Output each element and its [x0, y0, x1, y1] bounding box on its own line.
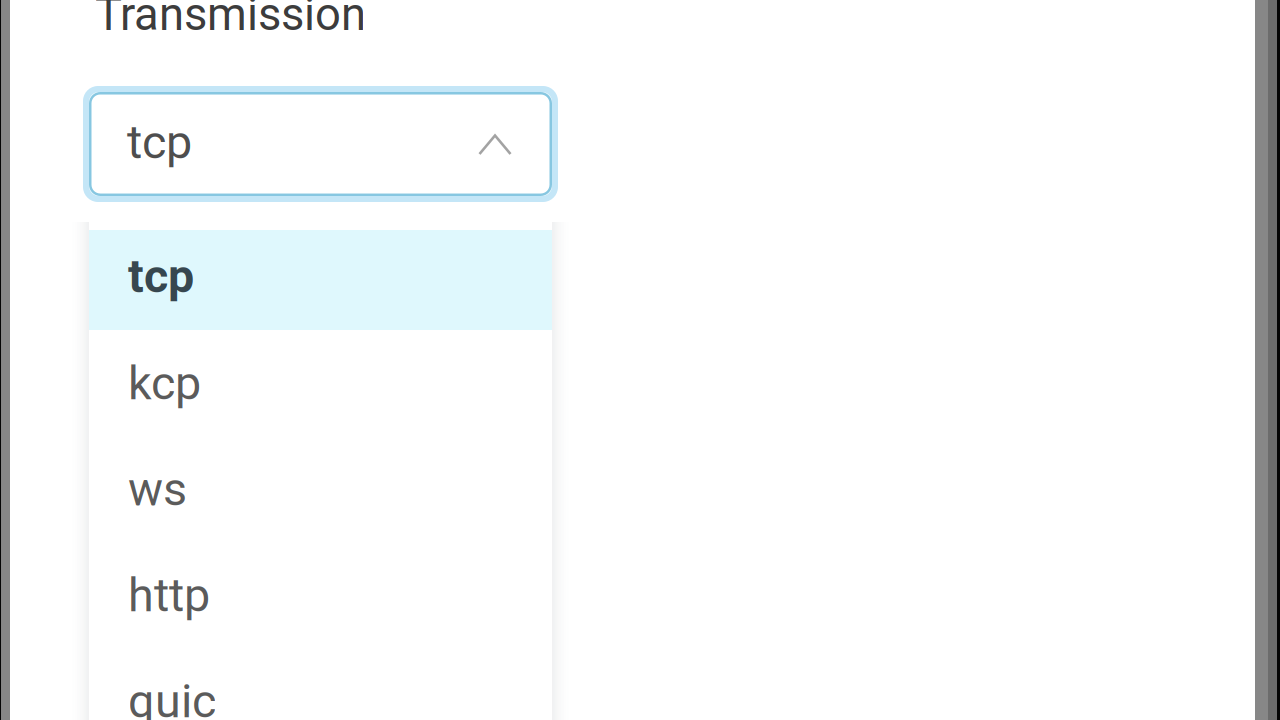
- button[interactable]: ws: [89, 462, 552, 568]
- staticText: tcp: [127, 115, 192, 170]
- button[interactable]: kcp: [89, 356, 552, 462]
- staticText: tcp: [128, 249, 194, 304]
- staticText: quic: [128, 674, 216, 720]
- button[interactable]: quic: [89, 674, 552, 720]
- button[interactable]: tcp: [89, 92, 552, 196]
- staticText: http: [128, 568, 210, 623]
- staticText: kcp: [128, 356, 201, 411]
- button[interactable]: http: [89, 568, 552, 674]
- staticText: ws: [128, 462, 187, 517]
- staticText: Transmission: [95, 0, 366, 41]
- button[interactable]: tcp: [89, 249, 552, 355]
